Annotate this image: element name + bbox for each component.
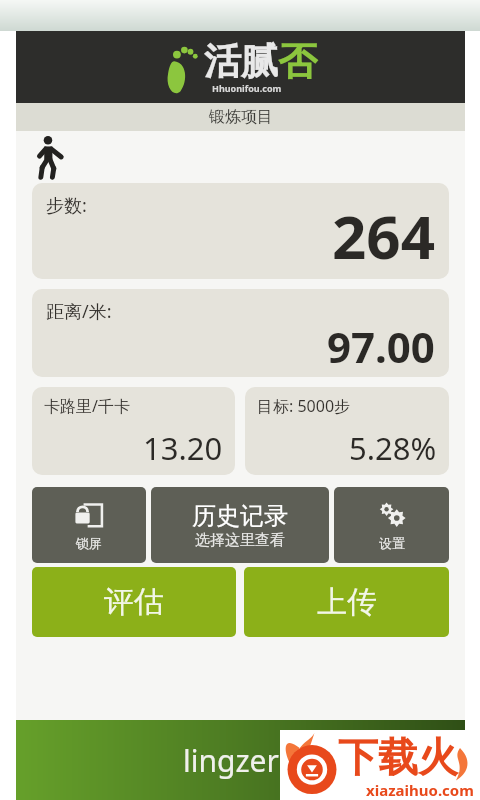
staticText: 活腻 — [204, 38, 278, 85]
button[interactable]: 锁屏 — [32, 487, 146, 563]
staticText: Hhuonifou.com — [212, 82, 282, 94]
staticText: 否 — [278, 37, 317, 86]
button[interactable]: 距离/米: — [32, 289, 449, 377]
staticText: 13.20 — [143, 427, 223, 469]
staticText: 评估 — [104, 583, 164, 621]
staticText: 设置 — [379, 535, 405, 551]
button[interactable]: 卡路里/千卡 — [32, 387, 235, 475]
staticText: 目标: 5000步 — [257, 395, 351, 417]
button[interactable]: 上传 — [244, 567, 449, 637]
staticText: 卡路里/千卡 — [44, 395, 130, 417]
button[interactable]: 步数: — [32, 183, 449, 279]
staticText: 锻炼项目 — [209, 107, 273, 127]
staticText: 锁屏 — [76, 535, 102, 551]
staticText: 步数: — [46, 193, 87, 218]
button[interactable]: 目标: 5000步 — [245, 387, 449, 475]
button[interactable]: 设置 — [334, 487, 449, 563]
staticText: 选择这里查看 — [195, 531, 285, 550]
staticText: 下载火 — [338, 732, 458, 782]
staticText: lingzerg — [183, 740, 298, 781]
button[interactable]: 历史记录 — [151, 487, 329, 563]
staticText: xiazaihuo.com — [366, 780, 474, 800]
staticText: 264 — [332, 195, 435, 277]
staticText: 97.00 — [327, 318, 435, 375]
staticText: 5.28% — [349, 427, 437, 469]
staticText: 距离/米: — [46, 299, 112, 324]
staticText: 上传 — [317, 583, 377, 621]
button[interactable]: 评估 — [32, 567, 236, 637]
staticText: 历史记录 — [192, 501, 288, 531]
